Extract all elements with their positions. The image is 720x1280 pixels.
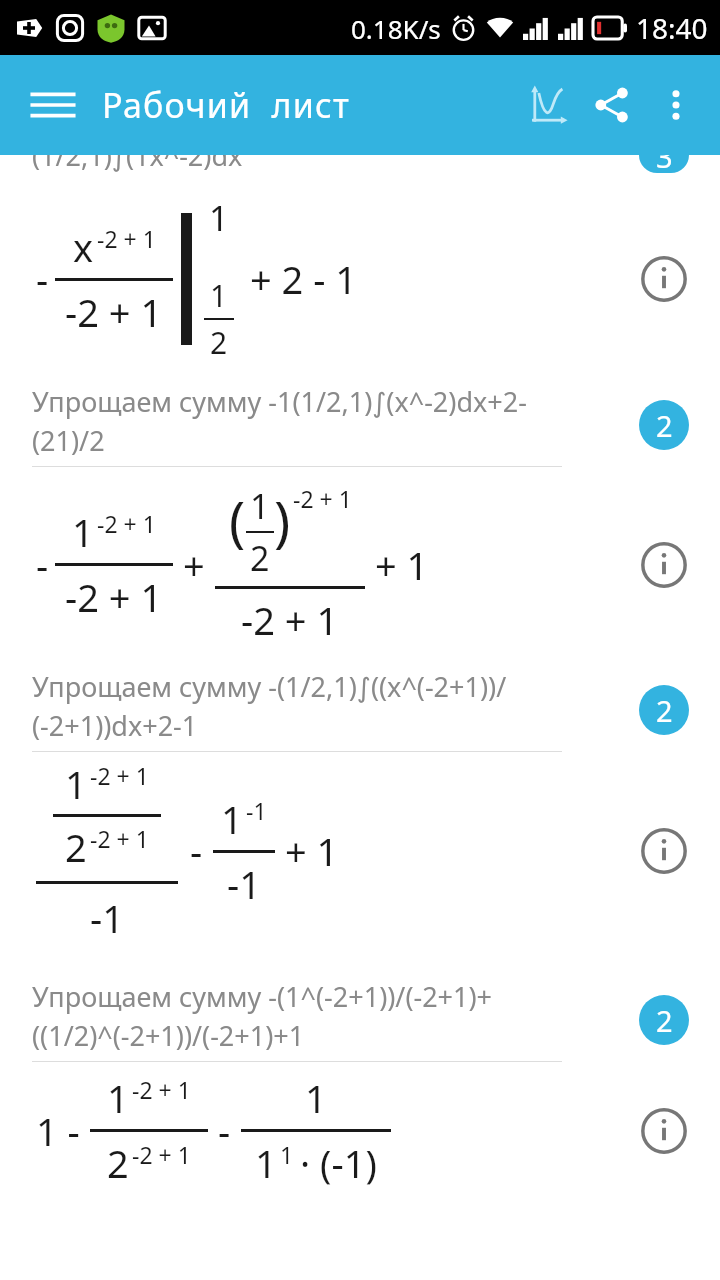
button[interactable]: Info — [629, 244, 699, 314]
staticText: -1 — [227, 858, 261, 910]
staticText: 2 — [250, 535, 270, 581]
staticText: 1 — [255, 1137, 277, 1189]
staticText: ( — [229, 483, 246, 557]
staticText: + 1 — [285, 825, 339, 877]
staticText: 1 — [210, 275, 228, 316]
button[interactable]: Упрощаем сумму -(1^(-2+1))/(-2+1)+((1/2)… — [0, 978, 720, 1062]
button[interactable]: Info — [629, 816, 699, 886]
staticText: 1 — [107, 1072, 129, 1124]
staticText: 2 — [656, 1001, 673, 1040]
staticText: -2 + 1 — [90, 823, 149, 854]
staticText: 2 — [107, 1137, 129, 1189]
button[interactable]: Info — [629, 1096, 699, 1166]
staticText: · (-1) — [300, 1137, 377, 1189]
staticText: -2 + 1 — [65, 286, 163, 338]
staticText: -2 + 1 — [97, 508, 156, 539]
staticText: + 1 — [375, 539, 429, 591]
staticText: 2 — [656, 406, 673, 445]
staticText: 0.18K/s — [351, 11, 441, 46]
staticText: 1 — [305, 1072, 327, 1124]
staticText: Упрощаем сумму -(1^(-2+1))/(-2+1)+((1/2)… — [32, 978, 568, 1054]
staticText: 1 — [65, 758, 87, 810]
staticText: -2 + 1 — [132, 1139, 191, 1170]
staticText: 1 - — [36, 1105, 80, 1157]
button[interactable]: Graph — [516, 73, 580, 137]
staticText: -2 + 1 — [90, 760, 149, 791]
staticText: + — [183, 539, 205, 591]
staticText: - — [36, 539, 49, 591]
button[interactable]: More options — [644, 73, 708, 137]
staticText: -1 — [246, 795, 267, 826]
button[interactable]: Упрощаем сумму -1(1/2,1)∫(x^-2)dx+2-(21)… — [0, 383, 720, 467]
staticText: -2 + 1 — [65, 571, 163, 623]
button[interactable]: Menu — [22, 74, 84, 136]
staticText: 18:40 — [636, 9, 708, 47]
staticText: Упрощаем сумму -1(1/2,1)∫(x^-2)dx+2-(21)… — [32, 383, 568, 459]
staticText: 1 — [221, 793, 243, 845]
staticText: 2 — [210, 322, 228, 363]
staticText: -2 + 1 — [132, 1074, 191, 1105]
staticText: - — [36, 253, 49, 305]
staticText: 1 — [280, 1139, 294, 1170]
button[interactable]: Упрощаем сумму -(1/2,1)∫((x^(-2+1))/(-2+… — [0, 668, 720, 752]
staticText: 2 — [656, 691, 673, 730]
staticText: - — [190, 825, 203, 877]
staticText: 3 — [656, 155, 673, 173]
staticText: - — [218, 1105, 231, 1157]
staticText: (1/2,1)∫(1x^-2)dx — [32, 155, 243, 173]
button[interactable]: Share — [580, 73, 644, 137]
staticText: -2 + 1 — [97, 223, 156, 254]
staticText: 1 — [72, 506, 94, 558]
button[interactable]: Info — [629, 530, 699, 600]
staticText: -1 — [90, 892, 124, 944]
staticText: -2 + 1 — [293, 483, 352, 514]
staticText: ) — [274, 483, 291, 557]
staticText: + 2 - 1 — [250, 253, 358, 305]
staticText: 1 — [250, 483, 270, 529]
staticText: x — [73, 221, 94, 273]
staticText: Рабочий лист — [102, 82, 516, 128]
staticText: Упрощаем сумму -(1/2,1)∫((x^(-2+1))/(-2+… — [32, 668, 568, 744]
staticText: 1 — [209, 195, 229, 241]
staticText: 2 — [65, 821, 87, 873]
staticText: -2 + 1 — [241, 594, 339, 646]
